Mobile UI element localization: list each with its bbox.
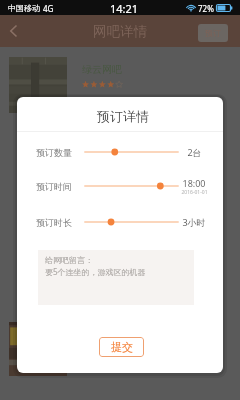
staticText: 中国移动 xyxy=(8,3,40,13)
button[interactable] xyxy=(81,138,182,166)
staticText: 预订数量 xyxy=(36,147,72,158)
staticText: 4G xyxy=(43,3,54,14)
button[interactable]: 预订 xyxy=(198,24,228,42)
staticText: 18:00 xyxy=(182,177,206,189)
button[interactable]: 提交 xyxy=(99,337,144,357)
staticText: 14:21 xyxy=(110,1,139,16)
staticText: 给网吧留言： xyxy=(45,255,93,265)
staticText: 网吧详情 xyxy=(93,23,147,40)
staticText: 3小时 xyxy=(182,216,206,228)
staticText: 绿云网吧 xyxy=(82,63,122,76)
staticText: 2016-01-01 xyxy=(181,189,208,196)
staticText: 预订时长 xyxy=(36,217,72,228)
button[interactable]: Back xyxy=(0,15,27,47)
staticText: 要5个连坐的，游戏区的机器 xyxy=(45,266,146,277)
other: Battery xyxy=(216,4,232,12)
button[interactable] xyxy=(81,208,182,236)
button[interactable] xyxy=(81,172,182,200)
staticText: 预订时间 xyxy=(36,181,72,192)
button[interactable]: 给网吧留言： xyxy=(38,250,194,305)
staticText: 提交 xyxy=(111,340,133,354)
other: Wi-Fi xyxy=(186,4,196,11)
staticText: 预订 xyxy=(205,28,221,38)
staticText: 72% xyxy=(198,3,214,14)
staticText: 预订详情 xyxy=(20,108,223,124)
staticText: 2台 xyxy=(187,146,202,158)
